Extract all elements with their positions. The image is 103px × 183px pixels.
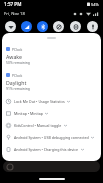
- staticText: 54%: [91, 2, 99, 7]
- button[interactable]: Mobile data: [18, 20, 34, 32]
- staticText: Android System • USB debugging connected: [14, 135, 89, 140]
- button[interactable]: Bluetooth: [34, 20, 50, 32]
- button[interactable]: Minitap • Minitap: [2, 107, 101, 119]
- button[interactable]: Flashlight: [84, 20, 101, 32]
- button[interactable]: Do not disturb: [67, 20, 84, 32]
- staticText: 50% remaining: [6, 60, 30, 65]
- staticText: Minitap • Minitap: [14, 111, 43, 116]
- staticText: 91% remaining: [6, 86, 30, 91]
- button[interactable]: Auto rotate: [50, 20, 67, 32]
- staticText: PClock: [12, 47, 23, 51]
- button[interactable]: PClock: [2, 43, 101, 69]
- button[interactable]: Wi-Fi: [2, 20, 18, 32]
- staticText: Android System • Charging this device: [14, 147, 79, 152]
- staticText: Fri, Nov 18: [4, 11, 25, 17]
- button[interactable]: Search: [3, 161, 100, 172]
- staticText: Awake: [6, 53, 22, 60]
- button[interactable]: KidsControl • Manual toggle: [2, 119, 101, 131]
- staticText: PClock: [12, 73, 23, 77]
- staticText: KidsControl • Manual toggle: [14, 123, 62, 128]
- button[interactable]: Android System • USB debugging connected: [2, 131, 101, 143]
- button[interactable]: PClock: [2, 69, 101, 95]
- staticText: 1:57 PM: [4, 1, 22, 7]
- button[interactable]: Lock Me Out • Usage Statistics: [2, 95, 101, 107]
- staticText: Lock Me Out • Usage Statistics: [14, 99, 65, 104]
- staticText: Daylight: [6, 79, 27, 86]
- button[interactable]: Android System • Charging this device: [2, 143, 101, 155]
